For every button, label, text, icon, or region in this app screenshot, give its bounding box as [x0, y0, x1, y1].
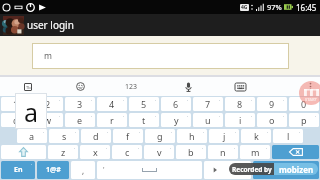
staticText: a	[29, 130, 35, 142]
staticText: ·	[155, 97, 157, 104]
button[interactable]: 9	[257, 97, 287, 111]
button[interactable]: v	[144, 145, 174, 159]
button[interactable]: r	[97, 113, 127, 127]
button[interactable]: Space	[97, 161, 202, 179]
button[interactable]: 8	[225, 97, 255, 111]
button[interactable]: 5	[129, 97, 159, 111]
button[interactable]: App icon	[3, 16, 24, 35]
button[interactable]: m	[240, 145, 270, 159]
button[interactable]: More options	[301, 77, 320, 96]
staticText: ·	[106, 145, 108, 152]
button[interactable]: 123	[111, 77, 151, 96]
button[interactable]: Tab	[12, 77, 44, 96]
staticText: e	[77, 114, 83, 126]
staticText: 8	[237, 98, 243, 110]
staticText: f	[126, 130, 130, 142]
staticText: u	[205, 114, 211, 126]
staticText: 2	[45, 98, 51, 110]
button[interactable]: Enter	[253, 161, 319, 179]
staticText: ·	[187, 113, 189, 120]
button[interactable]: Backspace	[272, 145, 319, 159]
button[interactable]: t	[129, 113, 159, 127]
button[interactable]: Voice input	[168, 77, 208, 96]
staticText: o	[269, 114, 275, 126]
staticText: i	[239, 114, 242, 126]
staticText: ·	[202, 145, 204, 152]
staticText: 1@#	[46, 165, 61, 175]
staticText: ·	[123, 113, 125, 120]
staticText: ·	[267, 129, 269, 136]
staticText: ·	[234, 145, 236, 152]
button[interactable]: q	[1, 113, 31, 127]
button[interactable]: b	[176, 145, 206, 159]
button[interactable]: j	[209, 129, 239, 143]
button[interactable]: u	[193, 113, 223, 127]
staticText: ·	[123, 97, 125, 104]
button[interactable]: 2	[33, 97, 63, 111]
button[interactable]: a	[17, 129, 47, 143]
button[interactable]: 1	[1, 97, 31, 111]
staticText: n	[220, 146, 226, 158]
button[interactable]: e	[65, 113, 95, 127]
staticText: d	[93, 130, 99, 142]
button[interactable]: Emoji	[60, 77, 100, 96]
button[interactable]: 7	[193, 97, 223, 111]
staticText: ·	[31, 161, 33, 168]
button[interactable]: Next	[204, 161, 251, 179]
staticText: 5	[141, 98, 147, 110]
staticText: Recorded by	[232, 165, 272, 174]
button[interactable]: 4	[97, 97, 127, 111]
button[interactable]: Keyboard layout	[220, 77, 260, 96]
button[interactable]: Mobizen recorder	[299, 81, 320, 105]
button[interactable]: m	[32, 43, 289, 69]
staticText: ·	[283, 113, 285, 120]
button[interactable]: g	[145, 129, 175, 143]
button[interactable]: h	[177, 129, 207, 143]
staticText: k	[254, 130, 259, 142]
staticText: b	[188, 146, 194, 158]
staticText: q	[13, 114, 19, 126]
button[interactable]: d	[81, 129, 111, 143]
staticText: m	[251, 146, 260, 158]
staticText: l	[287, 130, 290, 142]
button[interactable]: i	[225, 113, 255, 127]
staticText: ·	[283, 97, 285, 104]
staticText: En	[14, 165, 23, 175]
staticText: w	[44, 114, 52, 126]
staticText: '	[103, 165, 105, 175]
button[interactable]: s	[49, 129, 79, 143]
staticText: r	[110, 114, 114, 126]
button[interactable]: z	[48, 145, 78, 159]
button[interactable]: l	[273, 129, 303, 143]
staticText: j	[223, 130, 226, 142]
button[interactable]: En	[1, 161, 35, 179]
staticText: ·	[59, 113, 61, 120]
button[interactable]: 0	[289, 97, 319, 111]
staticText: c	[125, 146, 130, 158]
staticText: 3	[77, 98, 83, 110]
button[interactable]: 1@#	[37, 161, 69, 179]
button[interactable]: x	[80, 145, 110, 159]
button[interactable]: 3	[65, 97, 95, 111]
staticText: ·	[219, 97, 221, 104]
button[interactable]: Shift	[1, 145, 46, 159]
button[interactable]: f	[113, 129, 143, 143]
button[interactable]: c	[112, 145, 142, 159]
button[interactable]: 6	[161, 97, 191, 111]
button[interactable]: n	[208, 145, 238, 159]
staticText: ·	[138, 145, 140, 152]
staticText: 7	[205, 98, 211, 110]
staticText: ·	[170, 145, 172, 152]
staticText: ·	[315, 97, 317, 104]
staticText: Tb	[26, 85, 31, 90]
button[interactable]: o	[257, 113, 287, 127]
button[interactable]: ,	[71, 161, 95, 179]
button[interactable]: k	[241, 129, 271, 143]
button[interactable]: y	[161, 113, 191, 127]
button[interactable]: p	[289, 113, 319, 127]
staticText: ·	[187, 97, 189, 104]
staticText: START	[305, 97, 317, 102]
staticText: ·	[91, 113, 93, 120]
button[interactable]: w	[33, 113, 63, 127]
staticText: ·	[171, 129, 173, 136]
